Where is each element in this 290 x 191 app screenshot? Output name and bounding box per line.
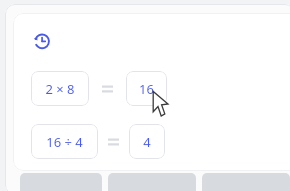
button[interactable]: 16 ÷ 4: [31, 124, 98, 159]
button[interactable]: History: [32, 32, 50, 50]
staticText: 2 × 8: [45, 80, 75, 98]
staticText: 16: [139, 80, 154, 98]
staticText: 4: [143, 133, 151, 151]
button[interactable]: 2 × 8: [31, 71, 89, 106]
button[interactable]: 16: [126, 71, 167, 106]
button[interactable]: 4: [129, 124, 165, 159]
staticText: 16 ÷ 4: [46, 133, 83, 151]
